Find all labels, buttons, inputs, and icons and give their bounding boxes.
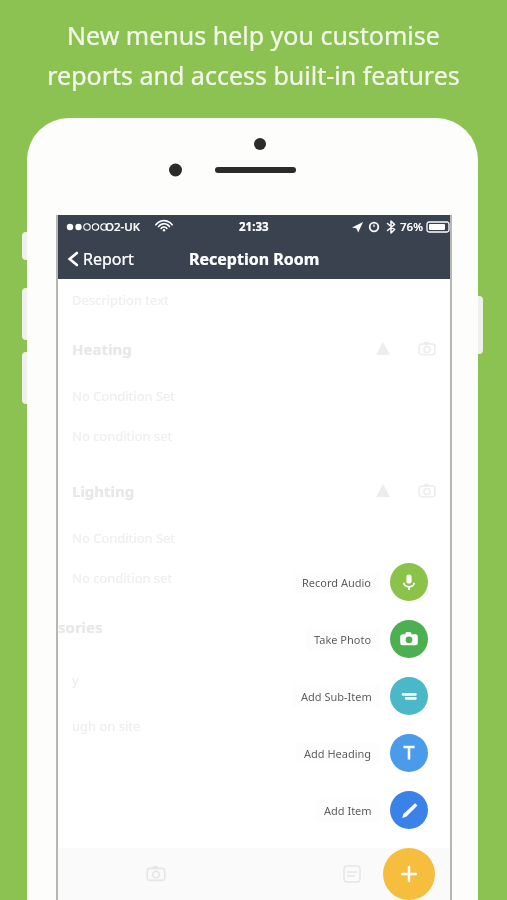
staticText: Heating: [72, 339, 132, 359]
staticText: Take Photo: [314, 632, 372, 647]
staticText: 76%: [400, 219, 423, 235]
staticText: Add Heading: [304, 746, 372, 761]
button[interactable]: Notes: [254, 848, 450, 900]
button[interactable]: Take Photo: [58, 620, 450, 658]
button[interactable]: Add: [383, 848, 435, 900]
staticText: No Condition Set: [72, 387, 176, 405]
button[interactable]: Add Heading: [58, 734, 450, 772]
staticText: sories: [58, 617, 103, 637]
staticText: Description text: [72, 291, 169, 309]
staticText: Report: [83, 248, 134, 270]
staticText: Lighting: [72, 481, 135, 501]
staticText: 21:33: [239, 219, 269, 235]
staticText: New menus help you customise: [67, 18, 440, 52]
button[interactable]: Record Audio: [58, 563, 450, 601]
staticText: Add Item: [324, 803, 372, 818]
staticText: No Condition Set: [72, 529, 176, 547]
staticText: ugh on site: [72, 717, 141, 735]
staticText: Reception Room: [189, 248, 320, 270]
staticText: Record Audio: [302, 575, 372, 590]
staticText: reports and access built-in features: [47, 58, 460, 92]
staticText: Add Sub-Item: [301, 689, 372, 704]
button[interactable]: Add Item: [58, 791, 450, 829]
button[interactable]: Report: [58, 242, 144, 276]
staticText: No condition set: [72, 427, 173, 445]
button[interactable]: Add Sub-Item: [58, 677, 450, 715]
staticText: No condition set: [72, 569, 173, 587]
staticText: O2-UK: [105, 219, 141, 235]
staticText: y: [72, 671, 79, 689]
